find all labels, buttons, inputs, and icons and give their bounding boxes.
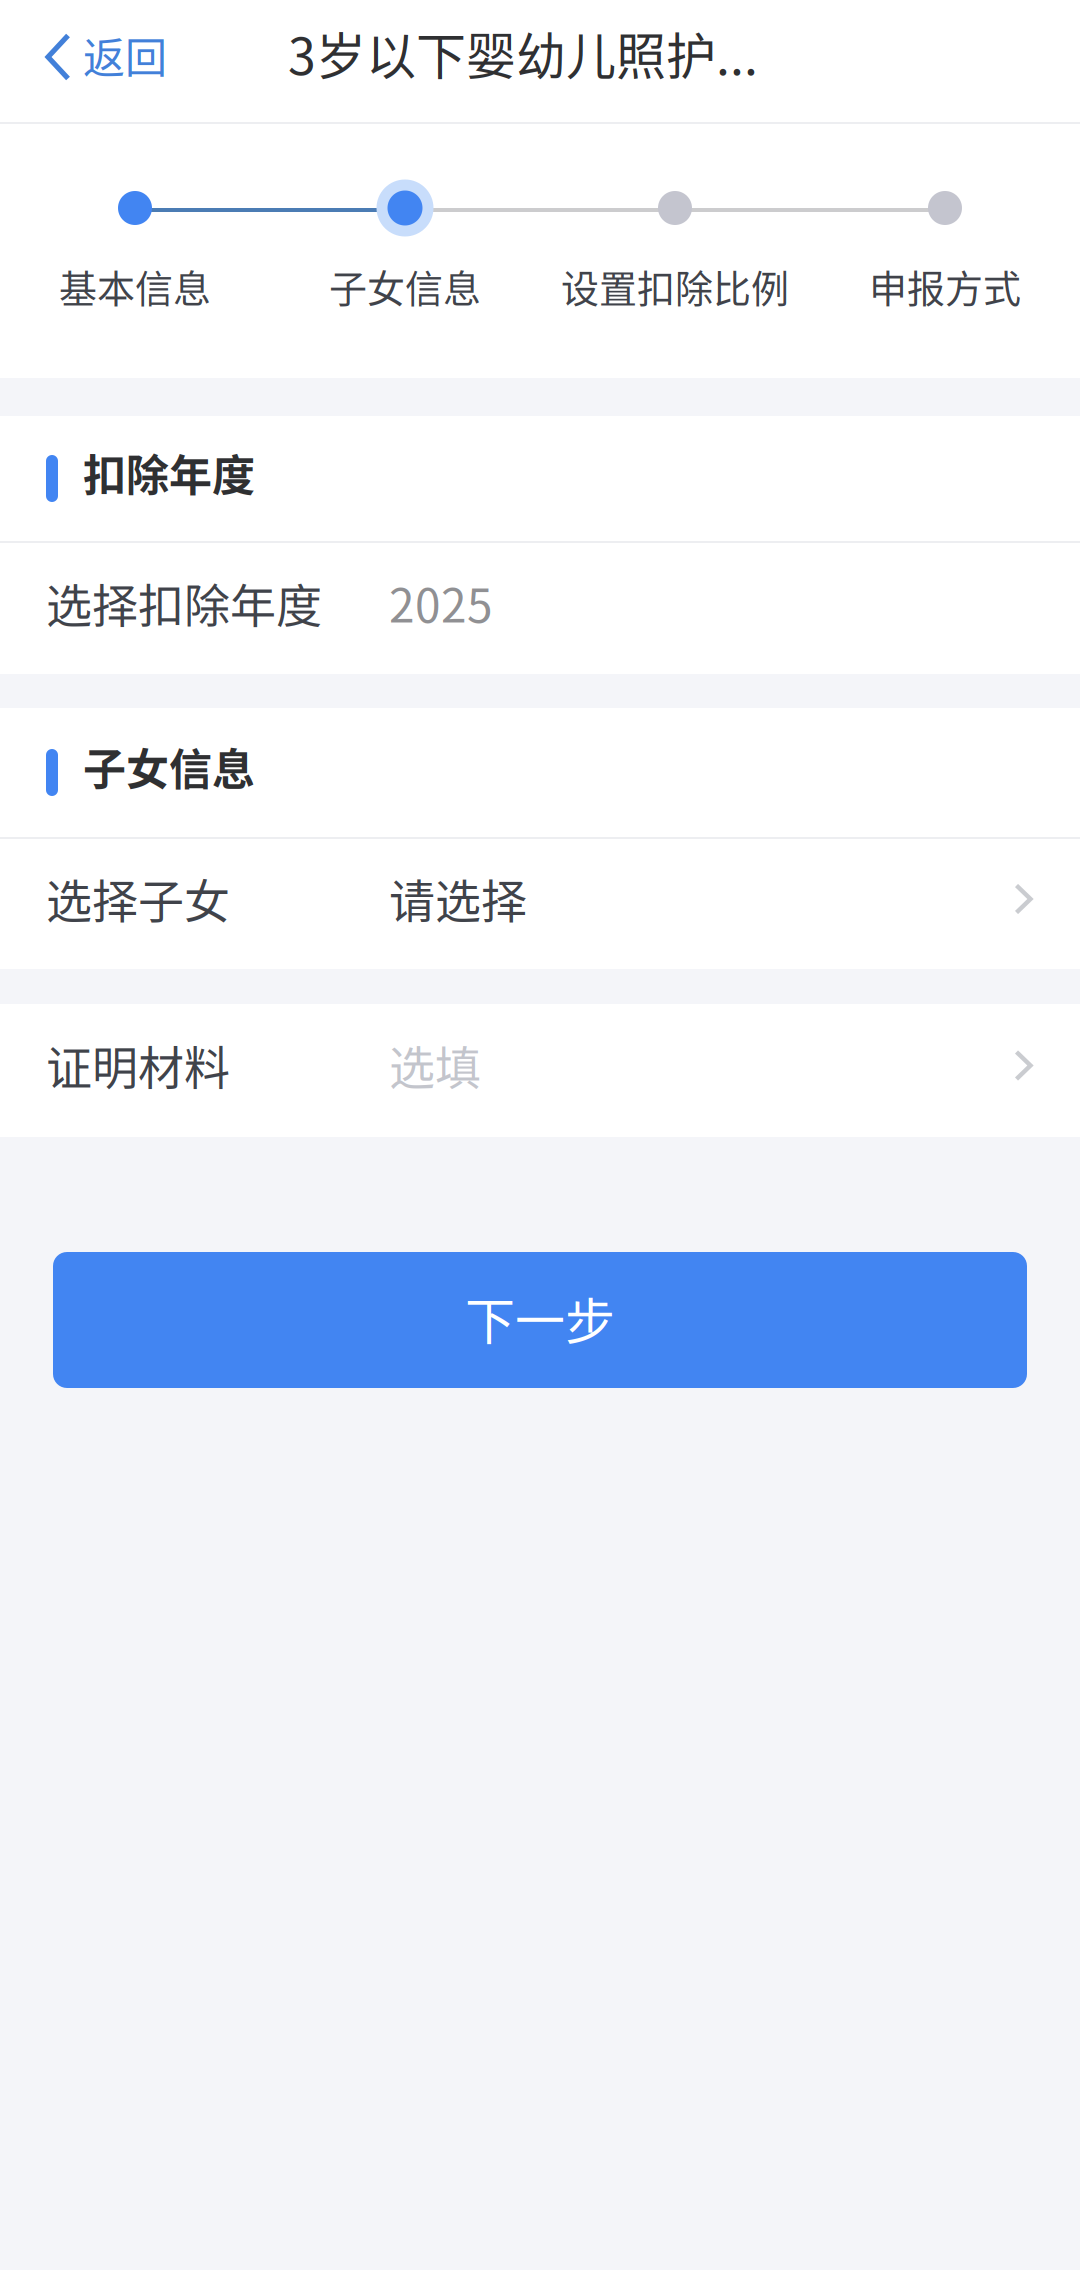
staticText: 申报方式	[869, 258, 1021, 313]
staticText: 证明材料	[46, 1031, 230, 1098]
staticText: 选填	[389, 1031, 481, 1098]
staticText: 选择子女	[46, 865, 230, 931]
button[interactable]: 返回	[0, 0, 195, 122]
button[interactable]: 下一步	[53, 1252, 1027, 1388]
button[interactable]: 设置扣除比例	[540, 264, 810, 318]
button[interactable]: 选择子女	[0, 839, 1080, 969]
staticText: 下一步	[465, 1282, 615, 1354]
staticText: 选择扣除年度	[46, 569, 322, 636]
button[interactable]: 子女信息	[270, 264, 540, 318]
staticText: 请选择	[389, 865, 527, 931]
button[interactable]: 基本信息	[0, 264, 270, 318]
button[interactable]: 申报方式	[810, 264, 1080, 318]
staticText: 3岁以下婴幼儿照护...	[288, 17, 758, 89]
button[interactable]: 选择扣除年度	[0, 543, 1080, 674]
staticText: 子女信息	[83, 735, 255, 798]
staticText: 基本信息	[59, 258, 211, 313]
staticText: 2025	[389, 569, 493, 636]
staticText: 扣除年度	[83, 441, 255, 504]
button[interactable]: 证明材料	[0, 1004, 1080, 1137]
staticText: 子女信息	[329, 258, 481, 313]
staticText: 返回	[83, 25, 167, 85]
staticText: 设置扣除比例	[561, 258, 789, 313]
